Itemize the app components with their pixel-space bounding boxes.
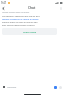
staticText: Lorem ipsum dolor sit amet <box>2 11 30 14</box>
staticText: Consectetur adipiscing elit sed do eius <box>2 15 40 18</box>
staticText: Message <box>7 86 17 89</box>
staticText: Chat <box>28 6 36 10</box>
button[interactable]: Voice input <box>59 86 62 89</box>
button[interactable]: Attach <box>2 85 6 89</box>
button[interactable]: Back <box>0 5 6 11</box>
button[interactable]: More options <box>58 5 64 11</box>
staticText: tempor incididunt ut labore et dolore <box>2 18 39 21</box>
staticText: 9:41 <box>1 1 7 5</box>
button[interactable]: Learn more <box>2 28 57 35</box>
staticText: Learn more <box>23 30 37 33</box>
staticText: magna aliqua ut enim ad minim ven <box>2 21 38 24</box>
button[interactable]: Send <box>54 86 57 89</box>
staticText: quis nostrud exercitation ullamco <box>2 24 35 27</box>
